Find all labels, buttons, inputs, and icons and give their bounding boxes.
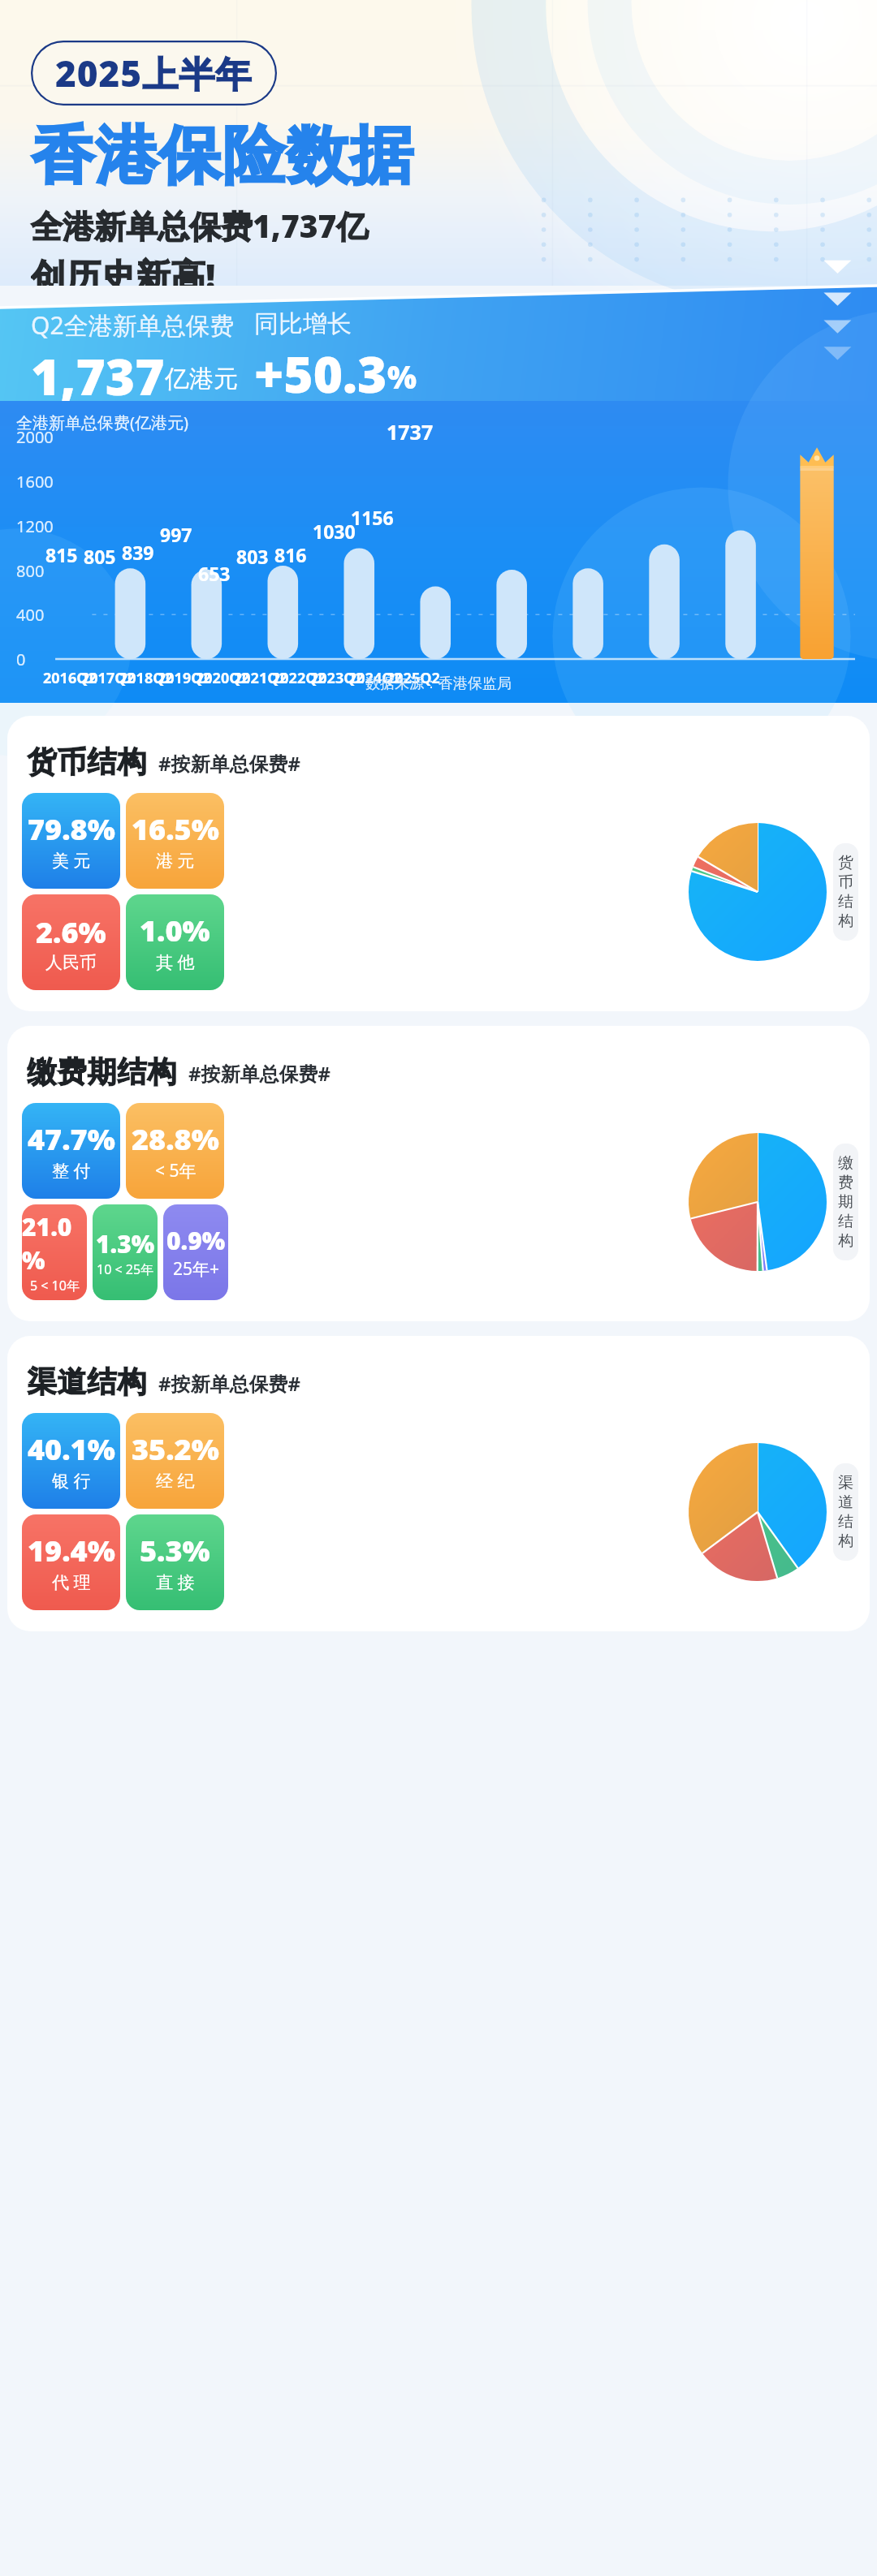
button[interactable]: 1.0%: [126, 894, 224, 990]
staticText: 货币结构: [27, 743, 147, 780]
staticText: 40.1%: [28, 1429, 115, 1469]
button[interactable]: 16.5%: [126, 793, 224, 889]
staticText: 2020Q2: [196, 668, 249, 688]
staticText: 2000: [16, 426, 54, 448]
staticText: 香港保险数据: [31, 117, 413, 196]
staticText: 渠道结构: [27, 1363, 147, 1400]
staticText: 缴: [838, 1153, 853, 1173]
staticText: 同比增长: [254, 308, 352, 339]
staticText: 1.3%: [96, 1227, 155, 1260]
staticText: 2025上半年: [55, 49, 253, 97]
staticText: 0.9%: [166, 1224, 226, 1257]
other: Pie chart: [689, 1443, 827, 1581]
staticText: 构: [838, 1531, 853, 1551]
staticText: 21.0%: [22, 1210, 87, 1277]
staticText: #按新单总保费#: [158, 1370, 301, 1397]
staticText: 400: [16, 604, 45, 626]
staticText: 5 < 10年: [30, 1277, 80, 1294]
staticText: 1030: [313, 519, 356, 544]
staticText: 805: [84, 544, 116, 569]
button[interactable]: 2.6%: [22, 894, 120, 990]
staticText: 币: [838, 872, 853, 892]
staticText: 数据来源：香港保监局: [365, 674, 512, 693]
staticText: 全港新单总保费(亿港元): [16, 411, 188, 433]
staticText: 全港新单总保费1,737亿: [31, 204, 369, 247]
staticText: 839: [122, 540, 154, 565]
staticText: 货: [838, 853, 853, 872]
staticText: 构: [838, 1231, 853, 1251]
staticText: 直 接: [156, 1570, 195, 1594]
button[interactable]: 0.9%: [163, 1204, 228, 1300]
staticText: 结: [838, 1212, 853, 1231]
staticText: 2018Q2: [119, 668, 173, 688]
staticText: 整 付: [52, 1159, 91, 1182]
staticText: 1200: [16, 515, 54, 537]
staticText: 创历史新高!: [31, 252, 216, 286]
staticText: 道: [838, 1493, 853, 1512]
staticText: #按新单总保费#: [158, 750, 301, 777]
staticText: 1156: [351, 505, 394, 530]
staticText: 5.3%: [140, 1531, 210, 1570]
staticText: 2024Q2: [348, 668, 402, 688]
staticText: 费: [838, 1173, 853, 1192]
staticText: 2023Q2: [310, 668, 364, 688]
button[interactable]: 2025上半年: [31, 41, 277, 106]
staticText: 19.4%: [28, 1531, 115, 1570]
staticText: 港 元: [156, 849, 195, 872]
staticText: 25年+: [173, 1257, 220, 1281]
staticText: 2019Q2: [158, 668, 211, 688]
staticText: 47.7%: [28, 1119, 115, 1159]
staticText: 2.6%: [36, 912, 106, 952]
staticText: %: [387, 355, 417, 398]
staticText: 35.2%: [132, 1429, 219, 1469]
button[interactable]: 79.8%: [22, 793, 120, 889]
other: Pie chart: [689, 1133, 827, 1271]
button[interactable]: 40.1%: [22, 1413, 120, 1509]
staticText: 28.8%: [132, 1119, 219, 1159]
staticText: 79.8%: [28, 809, 115, 849]
staticText: 803: [236, 544, 269, 569]
other: Pie chart: [689, 823, 827, 961]
staticText: 其 他: [156, 950, 195, 974]
staticText: 1737: [387, 418, 434, 446]
staticText: 815: [45, 542, 78, 567]
staticText: 人民币: [45, 952, 97, 973]
staticText: 渠: [838, 1473, 853, 1493]
staticText: 期: [838, 1192, 853, 1212]
staticText: #按新单总保费#: [188, 1060, 331, 1087]
button[interactable]: 47.7%: [22, 1103, 120, 1199]
staticText: 997: [160, 522, 192, 547]
staticText: 2021Q2: [234, 668, 287, 688]
button[interactable]: 28.8%: [126, 1103, 224, 1199]
staticText: 1600: [16, 471, 54, 493]
button[interactable]: 5.3%: [126, 1514, 224, 1610]
staticText: 1,737: [31, 342, 165, 401]
staticText: 缴费期结构: [27, 1053, 177, 1090]
staticText: 0: [16, 648, 26, 670]
staticText: +50.3: [254, 339, 387, 401]
staticText: 构: [838, 911, 853, 931]
staticText: < 5年: [155, 1159, 197, 1182]
staticText: 结: [838, 1512, 853, 1531]
button[interactable]: 19.4%: [22, 1514, 120, 1610]
staticText: 2017Q2: [81, 668, 135, 688]
staticText: 653: [198, 561, 231, 586]
button[interactable]: 21.0%: [22, 1204, 87, 1300]
staticText: 1.0%: [140, 911, 210, 950]
staticText: 16.5%: [132, 809, 219, 849]
staticText: 2022Q2: [272, 668, 326, 688]
staticText: 银 行: [52, 1469, 91, 1493]
staticText: 经 纪: [156, 1469, 195, 1493]
staticText: Q2全港新单总保费: [31, 308, 235, 342]
staticText: 美 元: [52, 849, 91, 872]
staticText: 结: [838, 892, 853, 911]
staticText: 代 理: [52, 1570, 91, 1594]
button[interactable]: 1.3%: [93, 1204, 158, 1300]
staticText: 10 < 25年: [97, 1260, 154, 1278]
staticText: 亿港元: [165, 364, 238, 394]
staticText: 2025Q2: [387, 668, 440, 688]
staticText: 800: [16, 560, 45, 582]
staticText: 816: [274, 542, 307, 567]
staticText: 2016Q2: [43, 668, 97, 688]
button[interactable]: 35.2%: [126, 1413, 224, 1509]
